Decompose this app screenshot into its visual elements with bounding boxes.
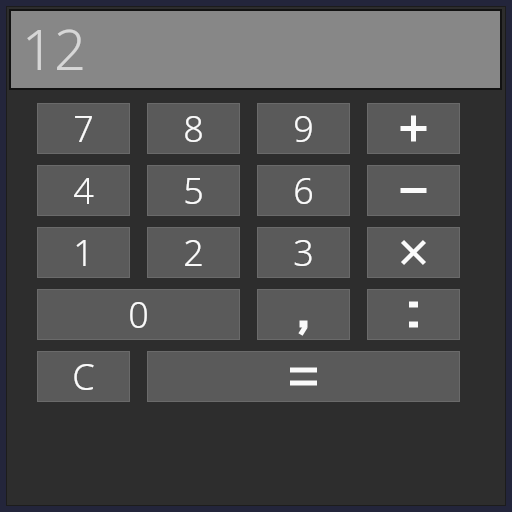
staticText: 5 (183, 166, 204, 215)
button[interactable]: Colon (367, 289, 460, 340)
button[interactable]: 0 (37, 289, 240, 340)
button[interactable]: Plus (367, 103, 460, 154)
staticText: 0 (128, 290, 149, 339)
button[interactable]: Comma (257, 289, 350, 340)
staticText: C (72, 352, 95, 401)
staticText: 2 (183, 228, 204, 277)
button[interactable]: Equals (147, 351, 460, 402)
button[interactable]: 12 (9, 9, 502, 90)
button[interactable]: 5 (147, 165, 240, 216)
staticText: 6 (293, 166, 314, 215)
staticText: 3 (293, 228, 314, 277)
staticText: 1 (73, 228, 94, 277)
button[interactable]: Minus (367, 165, 460, 216)
staticText: 7 (73, 104, 94, 153)
button[interactable]: 9 (257, 103, 350, 154)
staticText: 4 (73, 166, 94, 215)
staticText: 8 (183, 104, 204, 153)
button[interactable]: 3 (257, 227, 350, 278)
button[interactable]: 4 (37, 165, 130, 216)
staticText: 9 (293, 104, 314, 153)
button[interactable]: 7 (37, 103, 130, 154)
button[interactable]: 8 (147, 103, 240, 154)
button[interactable]: 1 (37, 227, 130, 278)
button[interactable]: C (37, 351, 130, 402)
staticText: 12 (22, 10, 86, 86)
button[interactable]: 2 (147, 227, 240, 278)
button[interactable]: 6 (257, 165, 350, 216)
button[interactable]: Multiply (367, 227, 460, 278)
